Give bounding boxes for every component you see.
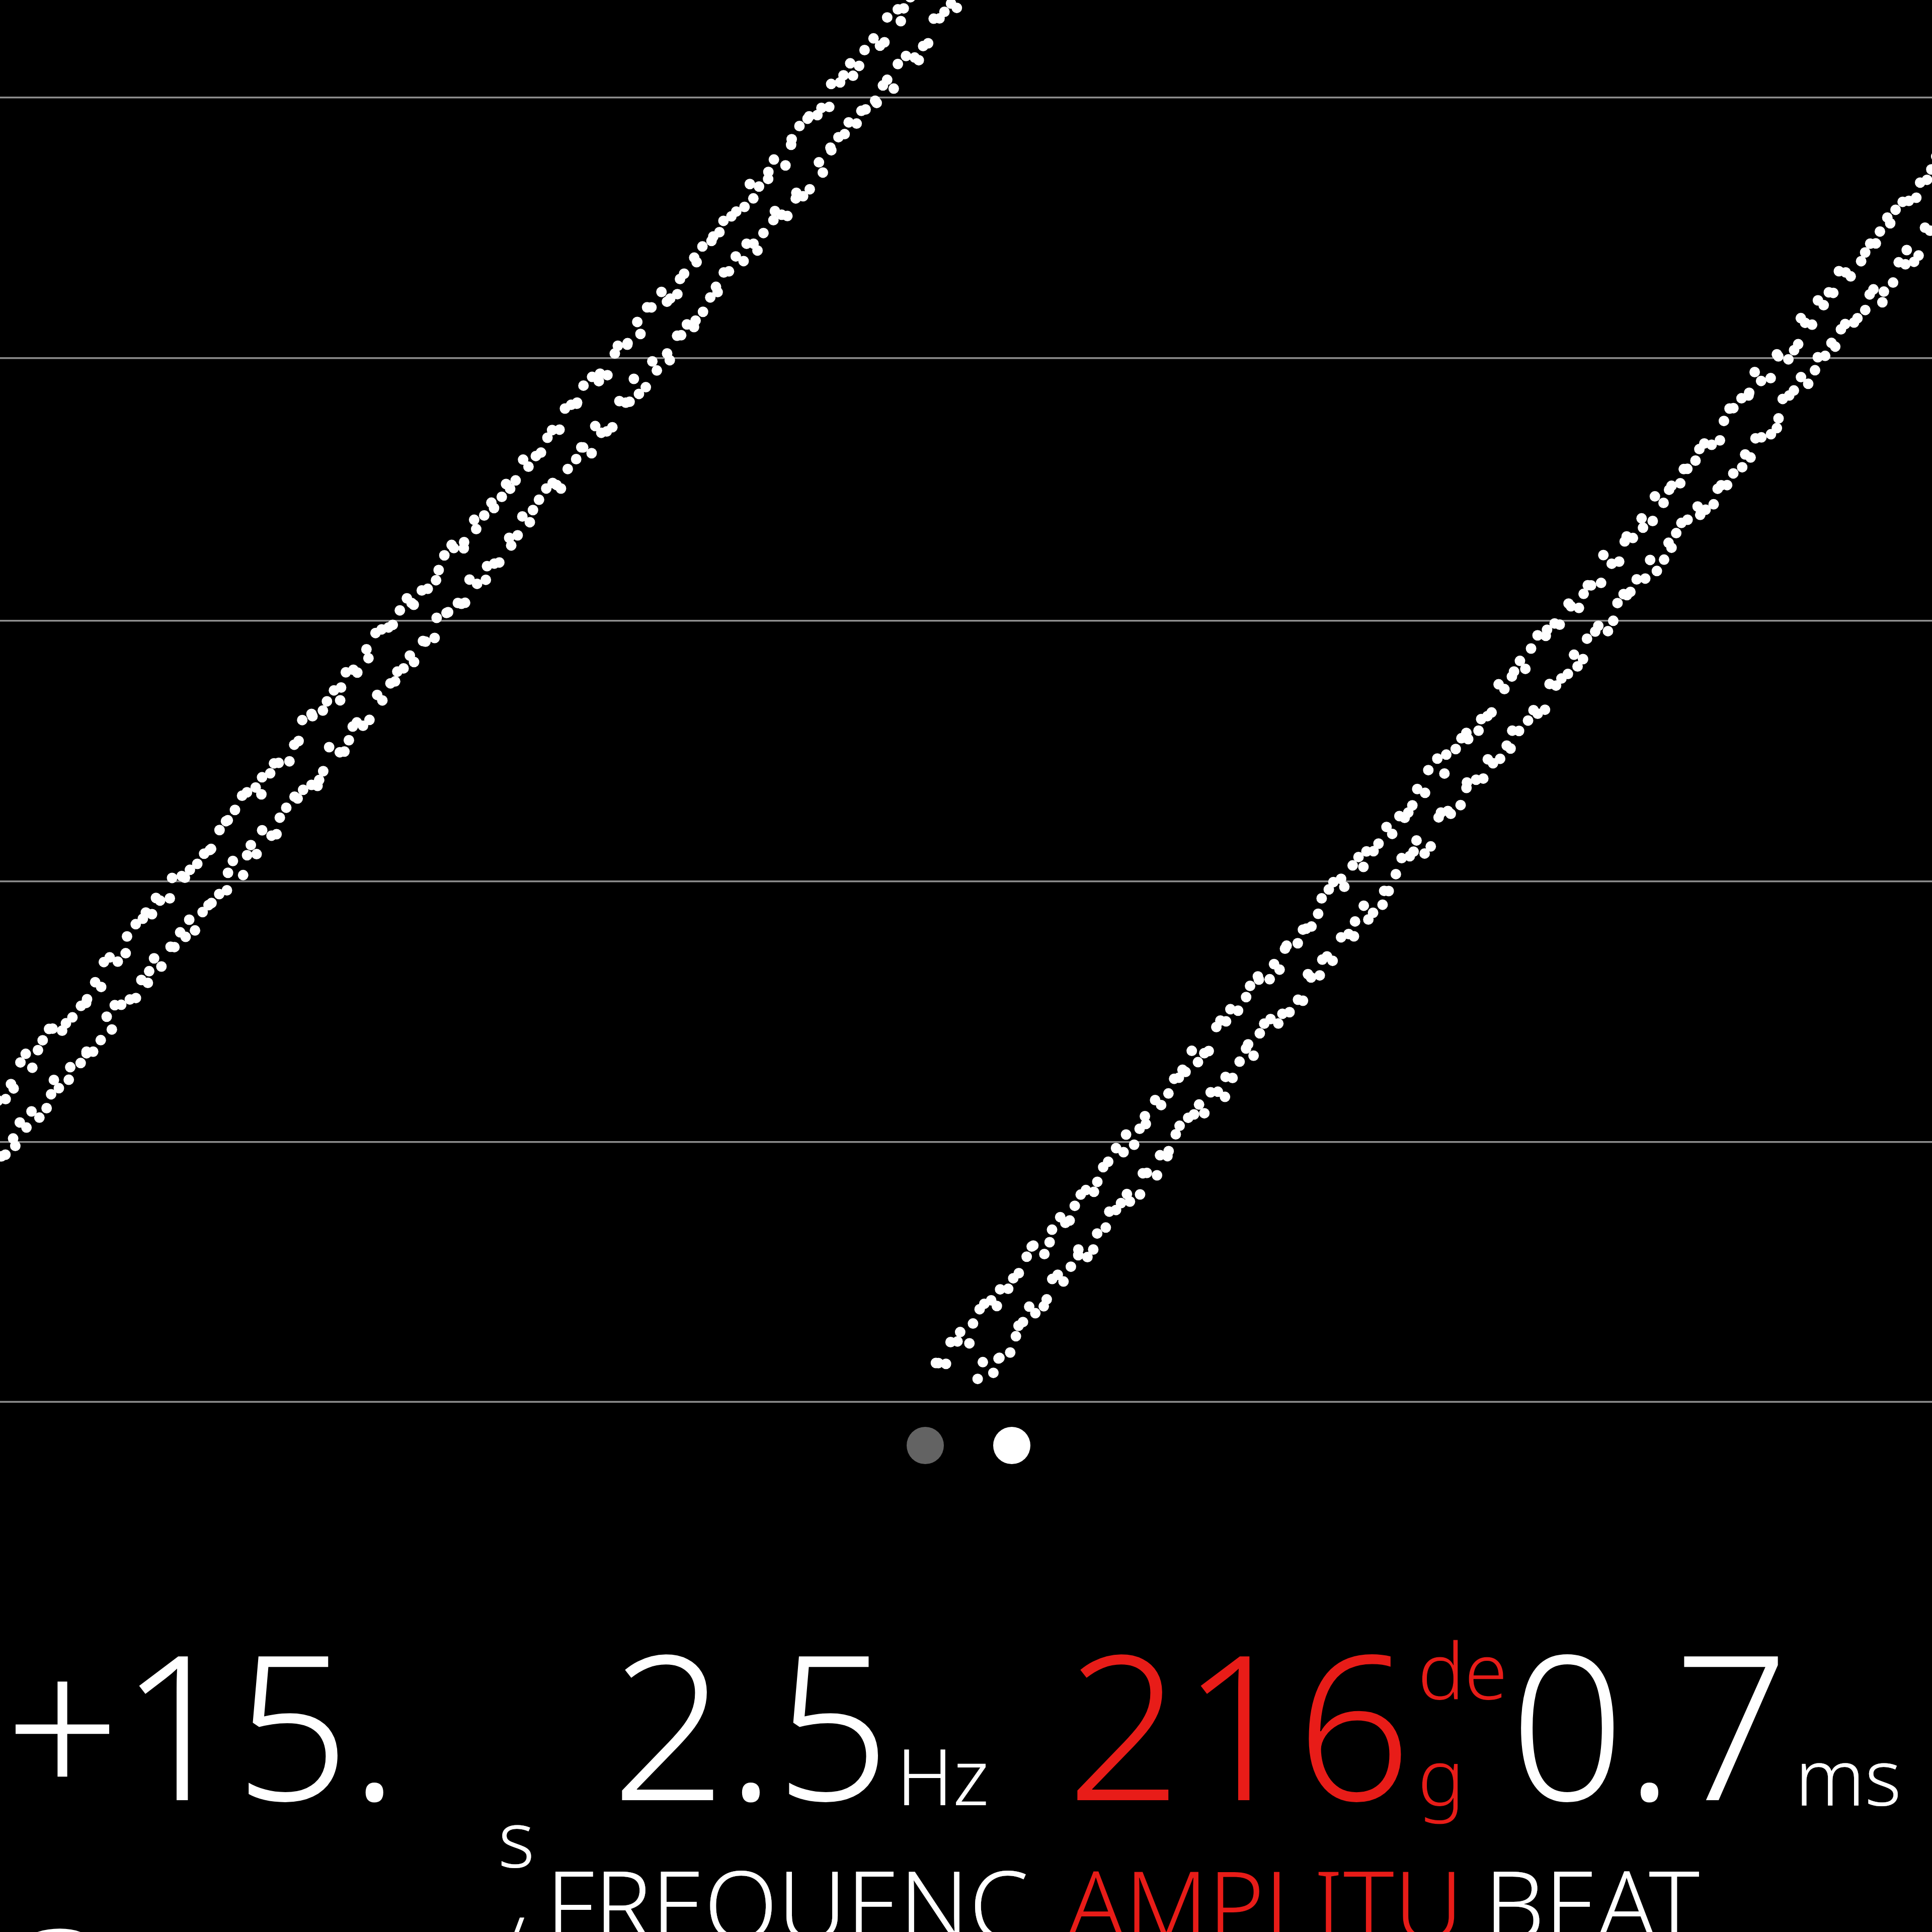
staticText: Hz: [897, 1722, 989, 1828]
button[interactable]: Page 1: [907, 1427, 944, 1464]
staticText: 2.5: [611, 1585, 891, 1859]
button[interactable]: 216: [1067, 1585, 1509, 1932]
staticText: deg: [1418, 1616, 1509, 1828]
button[interactable]: +15.3: [5, 1585, 498, 1932]
staticText: 0.7: [1510, 1585, 1789, 1859]
button[interactable]: Page 2: [993, 1427, 1030, 1464]
staticText: ms: [1795, 1722, 1901, 1828]
button[interactable]: 0.7: [1484, 1585, 1927, 1932]
button[interactable]: 2.5: [546, 1585, 1054, 1932]
staticText: FREQUENCY: [546, 1838, 1054, 1932]
staticText: +15.3: [5, 1585, 498, 1932]
staticText: AMPLITUDE: [1067, 1838, 1509, 1932]
staticText: BEAT ERROR: [1484, 1838, 1927, 1932]
staticText: 216: [1067, 1585, 1412, 1859]
